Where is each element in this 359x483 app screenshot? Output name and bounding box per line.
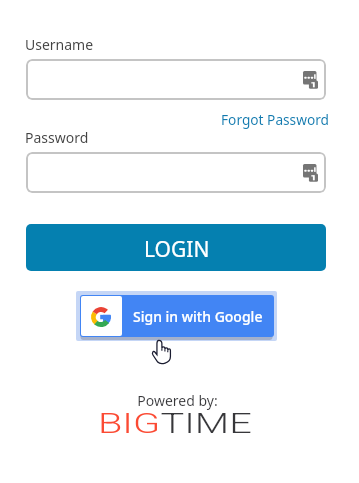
- button[interactable]: Show autofill suggestions: [26, 152, 326, 193]
- button[interactable]: Show autofill suggestions: [26, 59, 326, 100]
- button[interactable]: LOGIN: [26, 224, 326, 271]
- staticText: Sign in with Google: [133, 307, 263, 326]
- staticText: Password: [25, 128, 89, 147]
- button[interactable]: Show autofill suggestions: [303, 71, 318, 89]
- staticText: BIG: [98, 407, 160, 440]
- staticText: TIME: [160, 407, 253, 440]
- staticText: Username: [25, 35, 94, 54]
- button[interactable]: Sign in with Google: [76, 291, 277, 341]
- button[interactable]: Show autofill suggestions: [303, 164, 318, 182]
- staticText: Forgot Password: [221, 110, 330, 129]
- button[interactable]: Forgot Password: [221, 110, 330, 129]
- staticText: Powered by:: [0, 391, 357, 410]
- staticText: LOGIN: [144, 235, 210, 264]
